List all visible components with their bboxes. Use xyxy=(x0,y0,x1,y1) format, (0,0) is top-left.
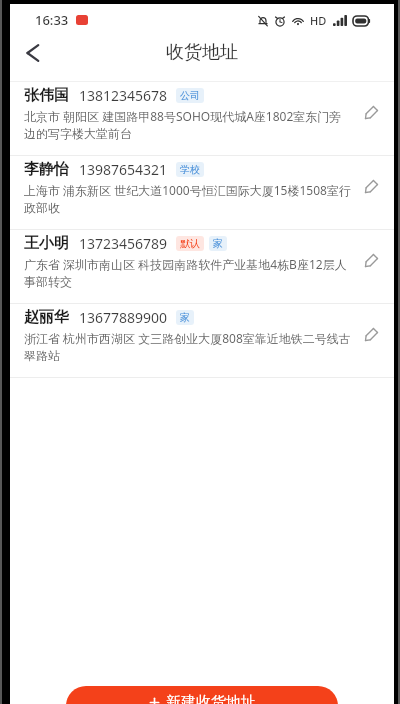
staticText: 北京市 朝阳区 建国路甲88号SOHO现代城A座1802室东门旁边的写字楼大堂前… xyxy=(24,108,351,141)
staticText: 收货地址 xyxy=(166,41,238,64)
staticText: 赵丽华 xyxy=(24,308,69,327)
staticText: 家 xyxy=(213,237,223,250)
button[interactable]: Edit address xyxy=(359,248,383,272)
staticText: 13812345678 xyxy=(79,86,168,105)
staticText: 学校 xyxy=(180,163,200,176)
staticText: 默认 xyxy=(180,237,200,250)
staticText: 王小明 xyxy=(24,234,69,253)
staticText: 李静怡 xyxy=(24,160,69,179)
button[interactable]: 王小明 xyxy=(10,230,394,303)
button[interactable]: Edit address xyxy=(359,322,383,346)
button[interactable]: 新建收货地址 xyxy=(66,686,338,704)
staticText: 13987654321 xyxy=(79,160,168,179)
button[interactable]: Back xyxy=(10,33,50,73)
staticText: 13677889900 xyxy=(79,308,168,327)
staticText: HD xyxy=(310,13,327,28)
staticText: 公司 xyxy=(180,89,200,102)
staticText: 新建收货地址 xyxy=(166,693,256,704)
button[interactable]: 李静怡 xyxy=(10,156,394,229)
button[interactable]: Edit address xyxy=(359,174,383,198)
button[interactable]: 赵丽华 xyxy=(10,304,394,377)
staticText: 13723456789 xyxy=(79,234,168,253)
staticText: 16:33 xyxy=(35,11,69,29)
staticText: 浙江省 杭州市西湖区 文三路创业大厦808室靠近地铁二号线古翠路站 xyxy=(24,330,351,363)
staticText: 上海市 浦东新区 世纪大道1000号恒汇国际大厦15楼1508室行政部收 xyxy=(24,182,351,215)
staticText: 张伟国 xyxy=(24,86,69,105)
button[interactable]: 张伟国 xyxy=(10,82,394,155)
button[interactable]: Edit address xyxy=(359,100,383,124)
staticText: 广东省 深圳市南山区 科技园南路软件产业基地4栋B座12层人事部转交 xyxy=(24,256,351,289)
staticText: 家 xyxy=(180,311,190,324)
